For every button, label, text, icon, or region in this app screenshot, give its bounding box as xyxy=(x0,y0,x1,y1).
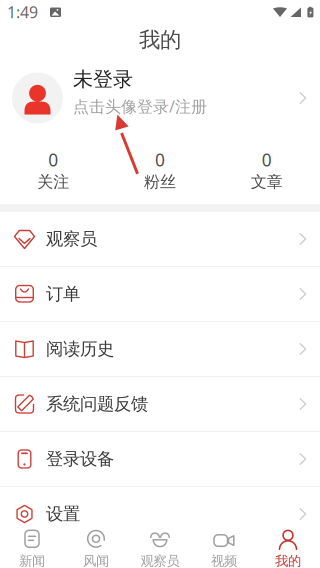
staticText: 未登录 xyxy=(73,67,133,92)
button[interactable]: 登录设备 xyxy=(0,432,320,486)
staticText: 文章 xyxy=(251,172,283,192)
button[interactable]: 0 xyxy=(213,140,320,204)
button[interactable]: 观察员 xyxy=(0,212,320,266)
button[interactable]: 风闻 xyxy=(64,526,128,568)
button[interactable]: 0 xyxy=(0,140,107,204)
button[interactable]: 我的 xyxy=(256,526,320,568)
button[interactable]: 0 xyxy=(107,140,213,204)
staticText: 我的 xyxy=(275,553,301,568)
staticText: 0 xyxy=(262,148,272,171)
staticText: 登录设备 xyxy=(46,448,114,470)
staticText: 我的 xyxy=(139,27,181,53)
staticText: 风闻 xyxy=(83,553,109,568)
staticText: 观察员 xyxy=(140,553,179,568)
staticText: 观察员 xyxy=(46,228,97,250)
staticText: 粉丝 xyxy=(144,172,176,192)
button[interactable]: 视频 xyxy=(192,526,256,568)
staticText: 1:49 xyxy=(7,1,38,23)
staticText: 订单 xyxy=(46,283,80,305)
button[interactable]: 新闻 xyxy=(0,526,64,568)
button[interactable]: 订单 xyxy=(0,267,320,321)
staticText: 关注 xyxy=(37,172,69,192)
staticText: 视频 xyxy=(211,553,237,568)
staticText: 设置 xyxy=(46,503,80,525)
button[interactable]: 观察员 xyxy=(128,526,192,568)
staticText: 点击头像登录/注册 xyxy=(73,96,207,117)
staticText: 系统问题反馈 xyxy=(46,393,148,415)
staticText: 新闻 xyxy=(19,553,45,568)
button[interactable]: 系统问题反馈 xyxy=(0,377,320,431)
staticText: 阅读历史 xyxy=(46,338,114,360)
button[interactable]: 设置 xyxy=(0,487,320,541)
staticText: 0 xyxy=(155,148,165,171)
button[interactable]: 阅读历史 xyxy=(0,322,320,376)
staticText: 0 xyxy=(48,148,58,171)
button[interactable]: 未登录 xyxy=(0,56,320,140)
